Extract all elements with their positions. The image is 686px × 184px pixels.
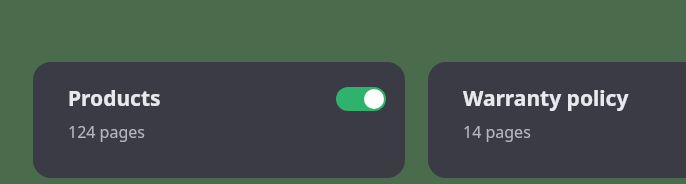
staticText: 124 pages [68,121,145,143]
staticText: Products [68,84,161,113]
staticText: 14 pages [463,121,531,143]
button[interactable]: Toggle visibility [336,87,386,111]
button[interactable]: Products [33,62,405,178]
staticText: Warranty policy [463,84,629,113]
button[interactable]: Warranty policy [428,62,686,178]
